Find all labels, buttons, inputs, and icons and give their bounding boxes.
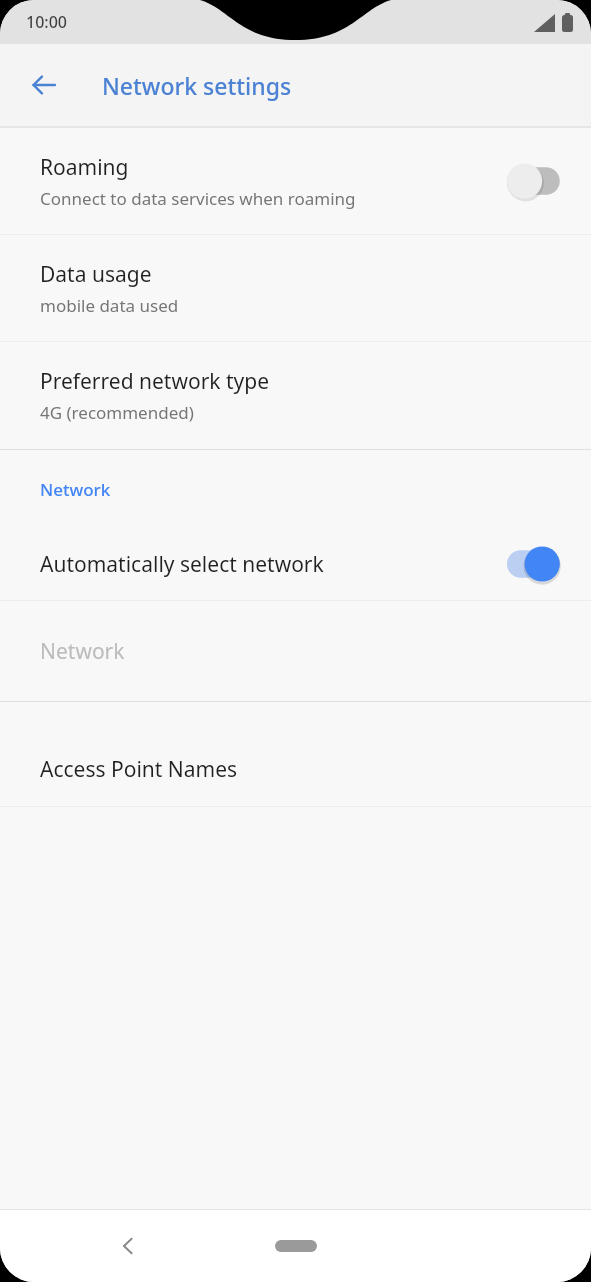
staticText: Network settings [102, 70, 292, 101]
staticText: Preferred network type [40, 367, 270, 396]
staticText: Roaming [40, 153, 129, 182]
button[interactable]: Automatically select network [0, 528, 591, 600]
staticText: Access Point Names [40, 755, 569, 784]
staticText: Data usage [40, 260, 152, 289]
staticText: Network [40, 637, 569, 666]
button[interactable]: Access Point Names [0, 732, 591, 806]
staticText: Network [40, 478, 111, 501]
button[interactable]: Back [102, 1220, 154, 1272]
button[interactable]: Back [18, 59, 70, 111]
button[interactable]: Data usage [0, 235, 591, 341]
button[interactable]: Roaming [0, 128, 591, 234]
staticText: 10:00 [26, 11, 67, 33]
button[interactable]: Roaming toggle, off [503, 159, 569, 203]
staticText: 4G (recommended) [40, 401, 194, 424]
button[interactable]: Preferred network type [0, 342, 591, 449]
button[interactable]: Automatically select network toggle, on [503, 542, 569, 586]
button[interactable]: Home [275, 1240, 317, 1252]
staticText: Automatically select network [40, 550, 503, 579]
staticText: mobile data used [40, 294, 179, 317]
staticText: Connect to data services when roaming [40, 187, 356, 210]
